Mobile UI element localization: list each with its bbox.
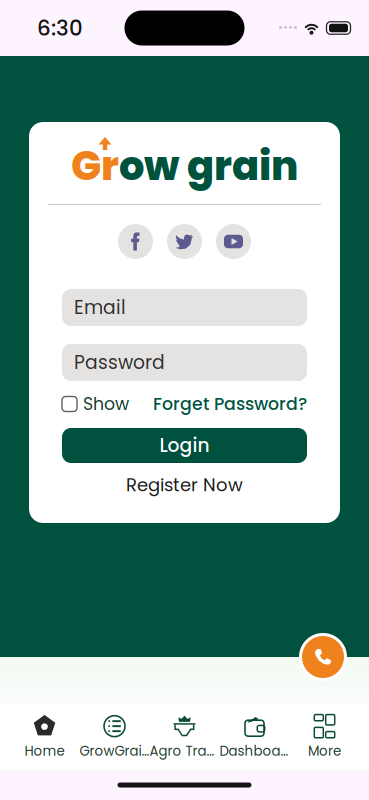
button[interactable]: Dashboard — [219, 707, 289, 766]
staticText: Dashboard — [219, 742, 289, 760]
staticText: Gr — [71, 138, 119, 194]
staticText: ow — [119, 138, 179, 194]
staticText: Login — [159, 432, 209, 458]
staticText: 6:30 — [37, 13, 83, 43]
staticText: Agro Trade — [149, 742, 219, 760]
button[interactable]: Agro Trade — [149, 707, 219, 766]
button[interactable]: Password — [62, 344, 307, 381]
staticText: Show — [83, 392, 129, 416]
button[interactable]: Chat on WhatsApp — [299, 633, 347, 681]
button[interactable]: Show — [62, 393, 129, 415]
staticText: Home — [24, 742, 64, 760]
button[interactable]: YouTube — [216, 224, 251, 259]
staticText: Email — [74, 294, 126, 320]
button[interactable]: More — [289, 707, 359, 766]
staticText: More — [308, 742, 341, 760]
button[interactable]: Facebook — [118, 224, 153, 259]
button[interactable]: Register Now — [126, 475, 243, 495]
staticText: Forget Password? — [153, 392, 307, 416]
staticText: grain — [187, 138, 298, 194]
button[interactable]: Twitter — [167, 224, 202, 259]
staticText: Password — [74, 349, 165, 375]
button[interactable]: GrowGrain — [79, 707, 149, 766]
button[interactable]: Login — [62, 428, 307, 463]
staticText: Register Now — [126, 472, 243, 498]
button[interactable]: Forget Password? — [153, 393, 307, 415]
staticText: GrowGrain — [79, 742, 149, 760]
button[interactable]: Email — [62, 289, 307, 326]
button[interactable]: Home — [9, 707, 79, 766]
